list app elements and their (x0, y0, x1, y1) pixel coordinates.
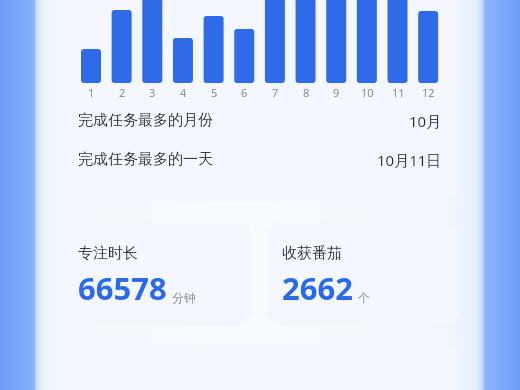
staticText: 10 (361, 85, 374, 100)
staticText: 4 (180, 85, 187, 100)
staticText: 1 (88, 85, 95, 100)
staticText: 6 (241, 85, 248, 100)
staticText: 分钟 (172, 290, 196, 305)
staticText: 9 (333, 85, 340, 100)
staticText: 3 (149, 85, 156, 100)
button[interactable]: 完成任务最多的一天 (78, 140, 442, 179)
staticText: 2 (119, 85, 126, 100)
staticText: 7 (272, 85, 279, 100)
staticText: 10月11日 (377, 150, 442, 170)
staticText: 10月 (409, 111, 442, 131)
staticText: 12 (422, 85, 435, 100)
staticText: 专注时长 (78, 244, 138, 263)
staticText: 完成任务最多的一天 (78, 150, 213, 169)
staticText: 完成任务最多的月份 (78, 111, 213, 130)
staticText: 66578 (78, 267, 167, 309)
staticText: 2662 (282, 267, 353, 309)
button[interactable]: 收获番茄 (266, 222, 458, 325)
button[interactable]: 1 (62, 0, 458, 201)
button[interactable]: 完成任务最多的月份 (78, 101, 442, 140)
staticText: 收获番茄 (282, 244, 342, 263)
staticText: 11 (392, 85, 405, 100)
staticText: 5 (211, 85, 218, 100)
staticText: 8 (303, 85, 310, 100)
button[interactable]: 专注时长 (62, 222, 253, 325)
staticText: 个 (358, 290, 370, 305)
